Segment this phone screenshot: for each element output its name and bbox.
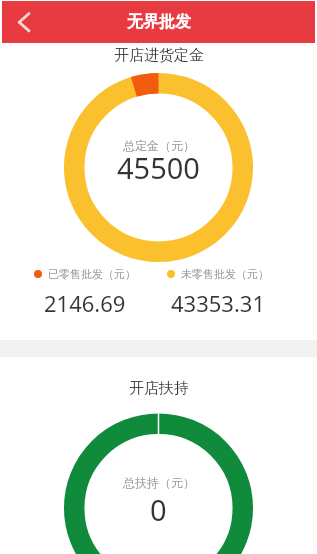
staticText: 开店扶持 — [129, 379, 189, 398]
staticText: 45500 — [117, 148, 200, 184]
staticText: 0 — [150, 490, 167, 526]
staticText: 无界批发 — [127, 12, 191, 32]
staticText: 总定金（元） — [123, 138, 195, 153]
staticText: 2146.69 — [44, 288, 126, 318]
button[interactable] — [2, 1, 46, 43]
staticText: 已零售批发（元） — [48, 267, 136, 281]
staticText: 总扶持（元） — [123, 475, 195, 490]
staticText: 开店进货定金 — [114, 46, 204, 65]
staticText: 未零售批发（元） — [181, 267, 269, 281]
staticText: 43353.31 — [171, 288, 265, 318]
